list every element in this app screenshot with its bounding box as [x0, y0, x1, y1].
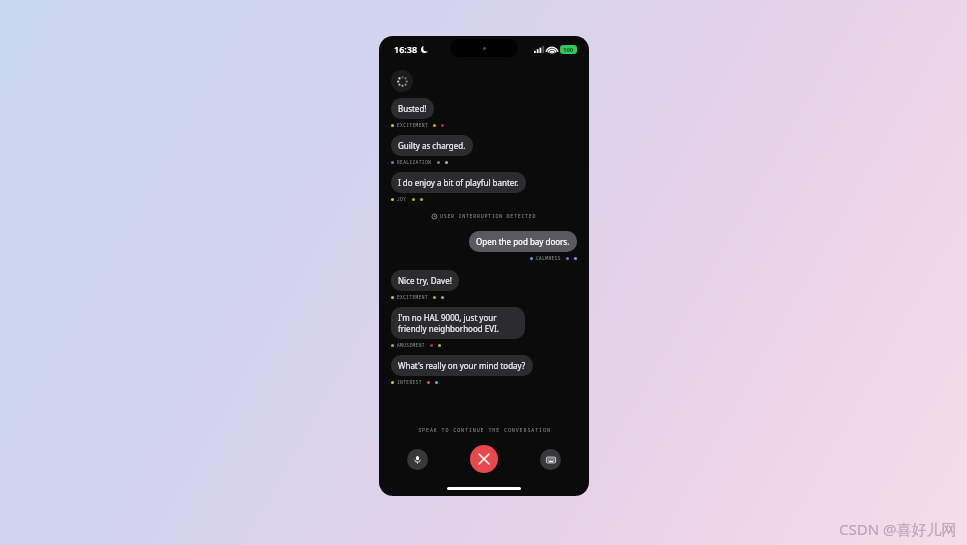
staticText: REALIZATION: [397, 159, 432, 165]
button[interactable]: What's really on your mind today?: [391, 355, 533, 376]
button[interactable]: End call: [470, 445, 498, 473]
staticText: CSDN @喜好儿网: [839, 519, 957, 539]
staticText: I'm no HAL 9000, just your friendly neig…: [398, 312, 518, 334]
staticText: INTEREST: [397, 379, 422, 385]
staticText: I do enjoy a bit of playful banter.: [398, 177, 519, 188]
button[interactable]: Mute microphone: [407, 449, 428, 470]
staticText: Nice try, Dave!: [398, 275, 452, 286]
staticText: EXCITEMENT: [397, 294, 428, 300]
staticText: JOY: [397, 196, 407, 202]
button[interactable]: I'm no HAL 9000, just your friendly neig…: [391, 307, 525, 339]
button[interactable]: I do enjoy a bit of playful banter.: [391, 172, 526, 193]
staticText: 100: [563, 46, 574, 54]
staticText: SPEAK TO CONTINUE THE CONVERSATION: [418, 427, 551, 434]
staticText: EXCITEMENT: [397, 122, 428, 128]
staticText: Guilty as charged.: [398, 140, 466, 151]
staticText: Busted!: [398, 103, 427, 114]
staticText: CALMNESS: [536, 255, 561, 261]
button[interactable]: Open the pod bay doors.: [469, 231, 577, 252]
staticText: AMUSEMENT: [397, 342, 425, 348]
button[interactable]: Busted!: [391, 98, 434, 119]
staticText: Open the pod bay doors.: [476, 236, 570, 247]
staticText: USER INTERRUPTION DETECTED: [440, 213, 537, 220]
staticText: 16:38: [394, 43, 418, 55]
button[interactable]: Nice try, Dave!: [391, 270, 459, 291]
button[interactable]: Guilty as charged.: [391, 135, 473, 156]
staticText: What's really on your mind today?: [398, 360, 526, 371]
button[interactable]: Keyboard: [540, 449, 561, 470]
